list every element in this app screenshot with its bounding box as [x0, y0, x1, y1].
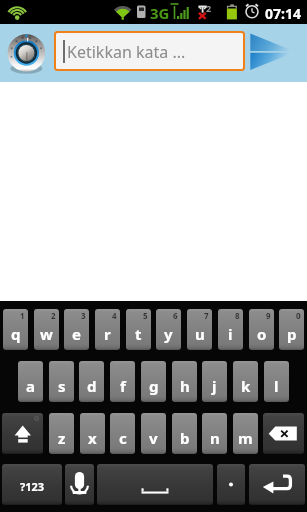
staticText: q: [11, 324, 21, 344]
staticText: j: [212, 376, 217, 396]
staticText: u: [195, 324, 205, 344]
button[interactable]: n: [202, 413, 227, 454]
button[interactable]: Period: [217, 464, 245, 505]
button[interactable]: Shift: [2, 413, 43, 454]
button[interactable]: 4: [95, 309, 120, 350]
staticText: a: [26, 376, 35, 396]
button[interactable]: 7: [187, 309, 212, 350]
button[interactable]: 8: [218, 309, 243, 350]
staticText: f: [120, 376, 126, 396]
staticText: p: [287, 324, 297, 344]
button[interactable]: 3: [64, 309, 89, 350]
staticText: z: [58, 428, 66, 448]
staticText: h: [180, 376, 190, 396]
staticText: x: [88, 428, 97, 448]
button[interactable]: Backspace: [263, 413, 304, 454]
button[interactable]: s: [49, 361, 74, 402]
staticText: e: [72, 324, 81, 344]
staticText: n: [210, 428, 220, 448]
button[interactable]: l: [264, 361, 289, 402]
staticText: Ketikkan kata ...: [67, 41, 186, 63]
button[interactable]: f: [110, 361, 135, 402]
button[interactable]: a: [18, 361, 43, 402]
staticText: 3: [81, 310, 86, 321]
button[interactable]: g: [141, 361, 166, 402]
staticText: 1: [20, 310, 25, 321]
staticText: ?123: [20, 479, 45, 494]
button[interactable]: 5: [126, 309, 151, 350]
button[interactable]: Symbols: [2, 464, 62, 505]
button[interactable]: v: [141, 413, 166, 454]
button[interactable]: 0: [279, 309, 304, 350]
staticText: 5: [143, 310, 148, 321]
staticText: 6: [173, 310, 178, 321]
button[interactable]: 1: [3, 309, 28, 350]
button[interactable]: h: [172, 361, 197, 402]
staticText: w: [40, 324, 53, 344]
button[interactable]: Enter: [249, 464, 305, 505]
staticText: v: [149, 428, 158, 448]
button[interactable]: m: [233, 413, 258, 454]
button[interactable]: 9: [249, 309, 274, 350]
staticText: l: [274, 376, 279, 396]
staticText: 8: [235, 310, 240, 321]
staticText: i: [228, 324, 233, 344]
staticText: k: [241, 376, 251, 396]
button[interactable]: c: [110, 413, 135, 454]
staticText: 3G: [150, 3, 170, 23]
staticText: b: [180, 428, 190, 448]
button[interactable]: d: [79, 361, 104, 402]
staticText: r: [104, 324, 111, 344]
button[interactable]: b: [172, 413, 197, 454]
staticText: 2: [51, 310, 56, 321]
staticText: 2: [206, 2, 212, 14]
staticText: d: [87, 376, 97, 396]
staticText: s: [58, 376, 66, 396]
staticText: c: [119, 428, 127, 448]
staticText: m: [238, 428, 253, 448]
staticText: 7: [204, 310, 209, 321]
button[interactable]: j: [202, 361, 227, 402]
button[interactable]: 2: [34, 309, 59, 350]
staticText: y: [164, 324, 173, 344]
button[interactable]: Ketikkan kata ...: [56, 33, 243, 69]
staticText: g: [149, 376, 159, 396]
staticText: 07:14: [265, 4, 301, 23]
staticText: 4: [112, 310, 117, 321]
button[interactable]: k: [233, 361, 258, 402]
button[interactable]: Space: [97, 464, 213, 505]
staticText: o: [257, 324, 267, 344]
button[interactable]: Voice input: [65, 464, 94, 505]
staticText: 9: [266, 310, 271, 321]
button[interactable]: x: [80, 413, 105, 454]
button[interactable]: 6: [156, 309, 181, 350]
button[interactable]: z: [49, 413, 74, 454]
staticText: t: [135, 324, 142, 344]
staticText: 0: [296, 310, 301, 321]
